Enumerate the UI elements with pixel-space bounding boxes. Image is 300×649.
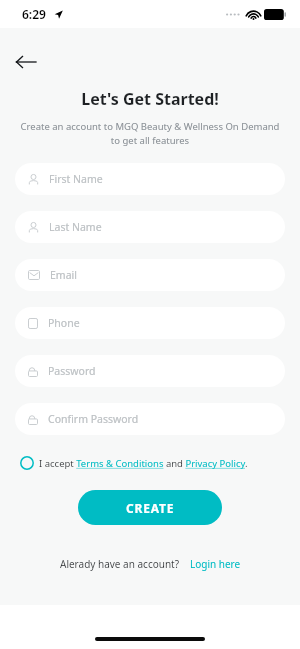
staticText: CREATE [126, 500, 175, 516]
button[interactable]: Phone [15, 307, 285, 339]
staticText: Phone [48, 316, 80, 330]
staticText: Last Name [49, 220, 102, 234]
staticText: 6:29 [22, 6, 46, 22]
button[interactable]: Password [15, 355, 285, 387]
button[interactable]: I accept Terms & Conditions and Privacy … [20, 456, 248, 470]
staticText: Email [50, 268, 77, 282]
staticText: I accept Terms & Conditions and Privacy … [39, 457, 248, 470]
staticText: First Name [49, 172, 103, 186]
staticText: Confirm Password [48, 412, 139, 426]
staticText: Let's Get Started! [0, 88, 300, 110]
button[interactable]: CREATE [78, 490, 222, 525]
staticText: Password [48, 364, 96, 378]
button[interactable]: Confirm Password [15, 403, 285, 435]
button[interactable]: Login here [190, 557, 241, 571]
button[interactable]: First Name [15, 163, 285, 195]
button[interactable]: Last Name [15, 211, 285, 243]
button[interactable]: Email [15, 259, 285, 291]
staticText: Create an account to MGQ Beauty & Wellne… [16, 120, 284, 147]
staticText: Alerady have an account? [60, 557, 180, 571]
staticText: Login here [190, 557, 241, 571]
button[interactable]: Back [8, 44, 44, 80]
